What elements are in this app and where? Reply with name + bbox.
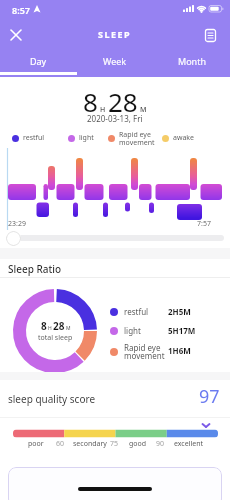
staticText: Day bbox=[30, 55, 47, 67]
staticText: light bbox=[124, 325, 141, 336]
staticText: 2H5M bbox=[168, 306, 191, 317]
staticText: restful bbox=[23, 133, 45, 143]
staticText: poor bbox=[28, 439, 44, 449]
button[interactable]: Week bbox=[76, 55, 153, 80]
staticText: 8 bbox=[41, 319, 47, 333]
staticText: awake bbox=[173, 133, 195, 143]
staticText: H bbox=[48, 325, 52, 332]
staticText: 7:57 bbox=[197, 219, 211, 229]
staticText: M bbox=[140, 105, 147, 115]
staticText: Sleep Ratio bbox=[8, 262, 62, 276]
staticText: 75 bbox=[110, 439, 119, 449]
staticText: Rapid eye movement bbox=[119, 130, 155, 147]
staticText: 8 bbox=[83, 84, 98, 119]
staticText: Month bbox=[178, 55, 206, 67]
staticText: 28 bbox=[53, 319, 65, 333]
button[interactable] bbox=[6, 25, 26, 45]
staticText: 28 bbox=[108, 84, 138, 119]
button[interactable] bbox=[8, 467, 222, 500]
button[interactable] bbox=[199, 24, 221, 46]
staticText: total sleep bbox=[38, 333, 73, 343]
staticText: 97 bbox=[199, 384, 220, 409]
staticText: 23:29 bbox=[8, 219, 26, 229]
staticText: 60 bbox=[56, 439, 65, 449]
staticText: 2020-03-13, Fri bbox=[87, 113, 143, 124]
button[interactable]: Day bbox=[0, 55, 76, 80]
staticText: SLEEP bbox=[98, 28, 132, 40]
button[interactable]: Month bbox=[153, 55, 230, 80]
staticText: 1H6M bbox=[168, 345, 191, 356]
staticText: Rapid eye movement bbox=[124, 342, 165, 361]
staticText: 90 bbox=[156, 439, 165, 449]
staticText: Week bbox=[103, 55, 127, 67]
staticText: sleep quality score bbox=[8, 392, 96, 406]
staticText: 8:57 bbox=[12, 4, 30, 16]
staticText: 5H17M bbox=[168, 325, 196, 336]
staticText: secondary bbox=[73, 439, 107, 449]
staticText: excellent bbox=[174, 439, 204, 449]
button[interactable] bbox=[6, 231, 21, 246]
staticText: restful bbox=[124, 306, 149, 317]
staticText: light bbox=[79, 133, 94, 143]
staticText: good bbox=[129, 439, 147, 449]
staticText: H bbox=[100, 105, 106, 115]
staticText: M bbox=[66, 325, 71, 332]
